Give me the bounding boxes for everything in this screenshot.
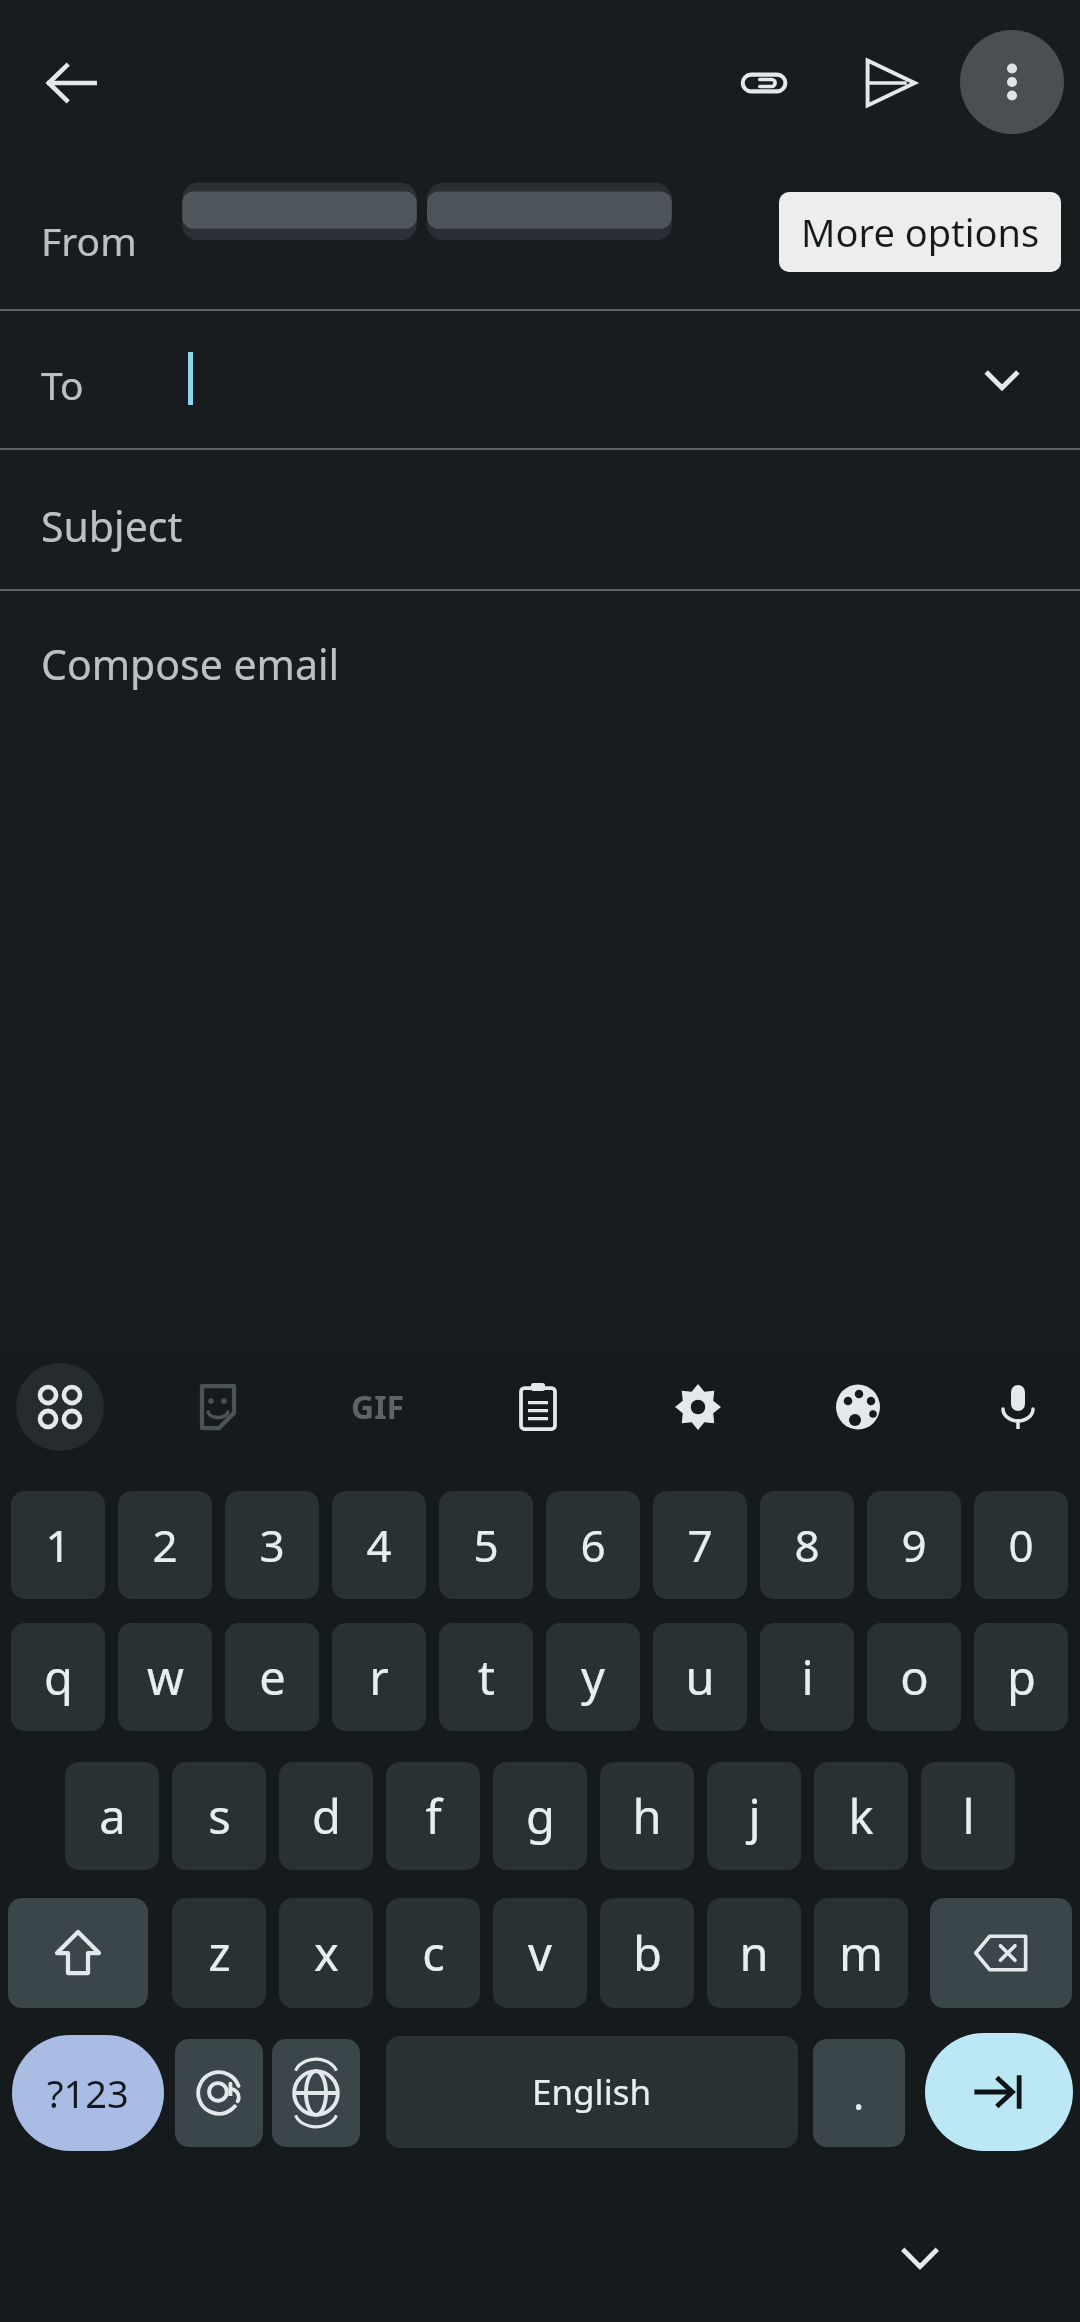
staticText: Compose email (41, 636, 340, 692)
staticText: 0 (1008, 1515, 1034, 1575)
button[interactable]: r (332, 1623, 426, 1731)
button[interactable]: k (814, 1762, 908, 1870)
button[interactable]: Backspace (930, 1898, 1072, 2008)
button[interactable]: w (118, 1623, 212, 1731)
button[interactable]: a (65, 1762, 159, 1870)
button[interactable]: v (493, 1898, 587, 2008)
staticText: 3 (259, 1515, 285, 1575)
button[interactable]: t (439, 1623, 533, 1731)
staticText: ?123 (47, 2067, 129, 2119)
button[interactable]: Shift (8, 1898, 148, 2008)
button[interactable]: Back (20, 31, 124, 135)
button[interactable]: Hide keyboard (868, 2205, 972, 2309)
button[interactable]: p (974, 1623, 1068, 1731)
button[interactable]: y (546, 1623, 640, 1731)
staticText: x (314, 1921, 339, 1985)
button[interactable]: GIF (334, 1363, 422, 1451)
staticText: 8 (794, 1515, 820, 1575)
staticText: 4 (366, 1515, 392, 1575)
staticText: 5 (473, 1515, 499, 1575)
staticText: m (839, 1921, 883, 1985)
staticText: 7 (687, 1515, 713, 1575)
button[interactable]: 1 (11, 1491, 105, 1599)
button[interactable]: Stickers (174, 1363, 262, 1451)
button[interactable]: Change language (272, 2039, 360, 2147)
staticText: From (41, 214, 137, 267)
staticText: 6 (580, 1515, 606, 1575)
staticText: u (685, 1645, 715, 1709)
button[interactable]: 3 (225, 1491, 319, 1599)
button[interactable]: 4 (332, 1491, 426, 1599)
button[interactable]: At sign (175, 2039, 263, 2147)
button[interactable]: m (814, 1898, 908, 2008)
staticText: d (312, 1784, 341, 1848)
staticText: o (900, 1645, 929, 1709)
staticText: GIF (351, 1385, 405, 1429)
button[interactable]: 9 (867, 1491, 961, 1599)
staticText: r (369, 1645, 389, 1709)
button[interactable]: To (0, 311, 1080, 448)
staticText: s (208, 1784, 231, 1848)
staticText: q (44, 1645, 73, 1709)
button[interactable]: More options menu (960, 30, 1064, 134)
staticText: n (739, 1921, 769, 1985)
staticText: i (801, 1645, 814, 1709)
staticText: j (748, 1784, 761, 1848)
staticText: . (853, 2065, 865, 2122)
button[interactable]: Voice input (974, 1363, 1062, 1451)
staticText: More options (801, 206, 1040, 258)
button[interactable]: h (600, 1762, 694, 1870)
staticText: b (633, 1921, 662, 1985)
button[interactable]: c (386, 1898, 480, 2008)
button[interactable]: More options (779, 192, 1061, 272)
staticText: Subject (41, 498, 183, 554)
button[interactable]: 0 (974, 1491, 1068, 1599)
button[interactable]: Toolbox (16, 1363, 104, 1451)
button[interactable]: Clipboard (494, 1363, 582, 1451)
staticText: k (848, 1784, 874, 1848)
button[interactable]: n (707, 1898, 801, 2008)
button[interactable]: Show Cc and Bcc (952, 329, 1052, 429)
button[interactable]: b (600, 1898, 694, 2008)
button[interactable]: x (279, 1898, 373, 2008)
button[interactable]: o (867, 1623, 961, 1731)
button[interactable]: z (172, 1898, 266, 2008)
button[interactable]: u (653, 1623, 747, 1731)
button[interactable]: . (813, 2039, 905, 2147)
staticText: w (147, 1645, 184, 1709)
staticText: 9 (901, 1515, 927, 1575)
staticText: e (259, 1645, 286, 1709)
button[interactable]: 6 (546, 1491, 640, 1599)
staticText: h (632, 1784, 662, 1848)
staticText: g (526, 1784, 555, 1848)
staticText: 2 (152, 1515, 178, 1575)
button[interactable]: 7 (653, 1491, 747, 1599)
button[interactable]: e (225, 1623, 319, 1731)
button[interactable]: d (279, 1762, 373, 1870)
button[interactable]: s (172, 1762, 266, 1870)
button[interactable]: Subject (0, 450, 1080, 589)
button[interactable]: f (386, 1762, 480, 1870)
button[interactable]: From (0, 162, 1080, 309)
staticText: 1 (45, 1515, 71, 1575)
staticText: y (581, 1645, 605, 1709)
button[interactable]: j (707, 1762, 801, 1870)
staticText: To (41, 358, 84, 411)
button[interactable]: 5 (439, 1491, 533, 1599)
button[interactable]: g (493, 1762, 587, 1870)
button[interactable]: English (386, 2036, 798, 2148)
button[interactable]: q (11, 1623, 105, 1731)
button[interactable]: i (760, 1623, 854, 1731)
button[interactable]: 2 (118, 1491, 212, 1599)
button[interactable]: Settings (654, 1363, 742, 1451)
button[interactable]: Send (838, 31, 942, 135)
button[interactable]: Themes (814, 1363, 902, 1451)
staticText: c (422, 1921, 445, 1985)
button[interactable]: Symbols (12, 2035, 164, 2151)
button[interactable]: Compose email (0, 591, 1080, 791)
button[interactable]: l (921, 1762, 1015, 1870)
button[interactable]: 8 (760, 1491, 854, 1599)
button[interactable]: Attach file (711, 31, 815, 135)
button[interactable]: Next field (925, 2033, 1073, 2151)
staticText: f (425, 1784, 442, 1848)
